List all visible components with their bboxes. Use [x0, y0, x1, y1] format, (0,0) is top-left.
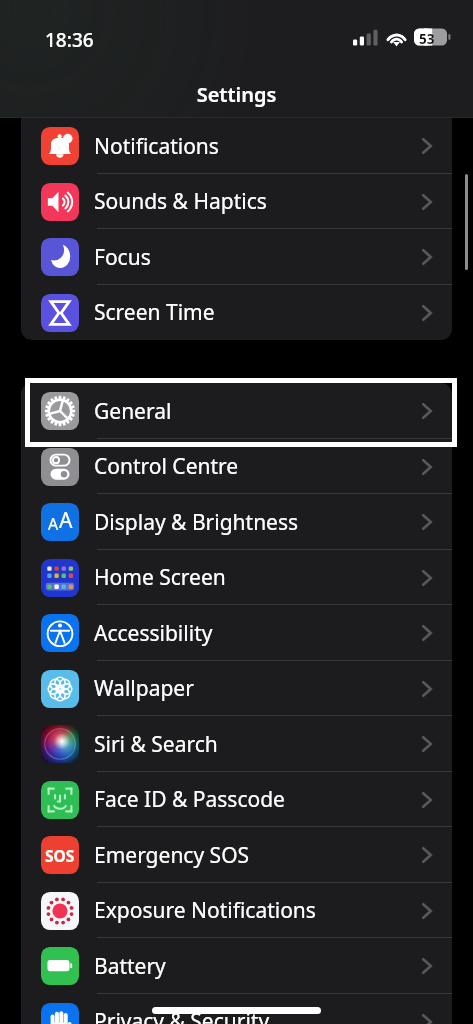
button[interactable]: Face ID & Passcode — [21, 772, 452, 827]
staticText: General — [94, 397, 172, 426]
button[interactable]: Home Screen — [21, 550, 452, 605]
staticText: Display & Brightness — [94, 508, 299, 537]
button[interactable]: Siri & Search — [21, 716, 452, 772]
staticText: Home Screen — [94, 563, 226, 592]
staticText: Privacy & Security — [94, 1007, 270, 1024]
staticText: Screen Time — [94, 298, 215, 327]
button[interactable]: A — [21, 494, 452, 550]
button[interactable]: SOS — [21, 827, 452, 883]
staticText: Face ID & Passcode — [94, 785, 285, 814]
button[interactable]: Wallpaper — [21, 661, 452, 716]
staticText: Wallpaper — [94, 674, 194, 703]
staticText: SOS — [45, 845, 75, 866]
button[interactable]: Sounds & Haptics — [21, 174, 452, 229]
staticText: Focus — [94, 243, 151, 272]
button[interactable]: Privacy & Security — [21, 994, 452, 1024]
button[interactable]: Notifications — [21, 118, 452, 174]
staticText: Battery — [94, 952, 166, 981]
staticText: Control Centre — [94, 452, 239, 481]
staticText: Emergency SOS — [94, 841, 250, 870]
button[interactable]: Control Centre — [21, 439, 452, 494]
staticText: A — [59, 506, 73, 535]
staticText: A — [48, 513, 59, 535]
button[interactable]: Accessibility — [21, 605, 452, 661]
button[interactable]: Screen Time — [21, 285, 452, 340]
staticText: Exposure Notifications — [94, 896, 316, 925]
staticText: 53 — [419, 30, 435, 48]
staticText: Accessibility — [94, 619, 213, 648]
staticText: Notifications — [94, 132, 219, 161]
button[interactable]: Exposure Notifications — [21, 883, 452, 938]
staticText: 18:36 — [45, 27, 94, 53]
button[interactable]: General — [21, 383, 452, 439]
button[interactable]: Focus — [21, 229, 452, 285]
button[interactable]: Battery — [21, 938, 452, 994]
staticText: Settings — [0, 81, 473, 108]
staticText: Sounds & Haptics — [94, 187, 267, 216]
staticText: Siri & Search — [94, 730, 218, 759]
